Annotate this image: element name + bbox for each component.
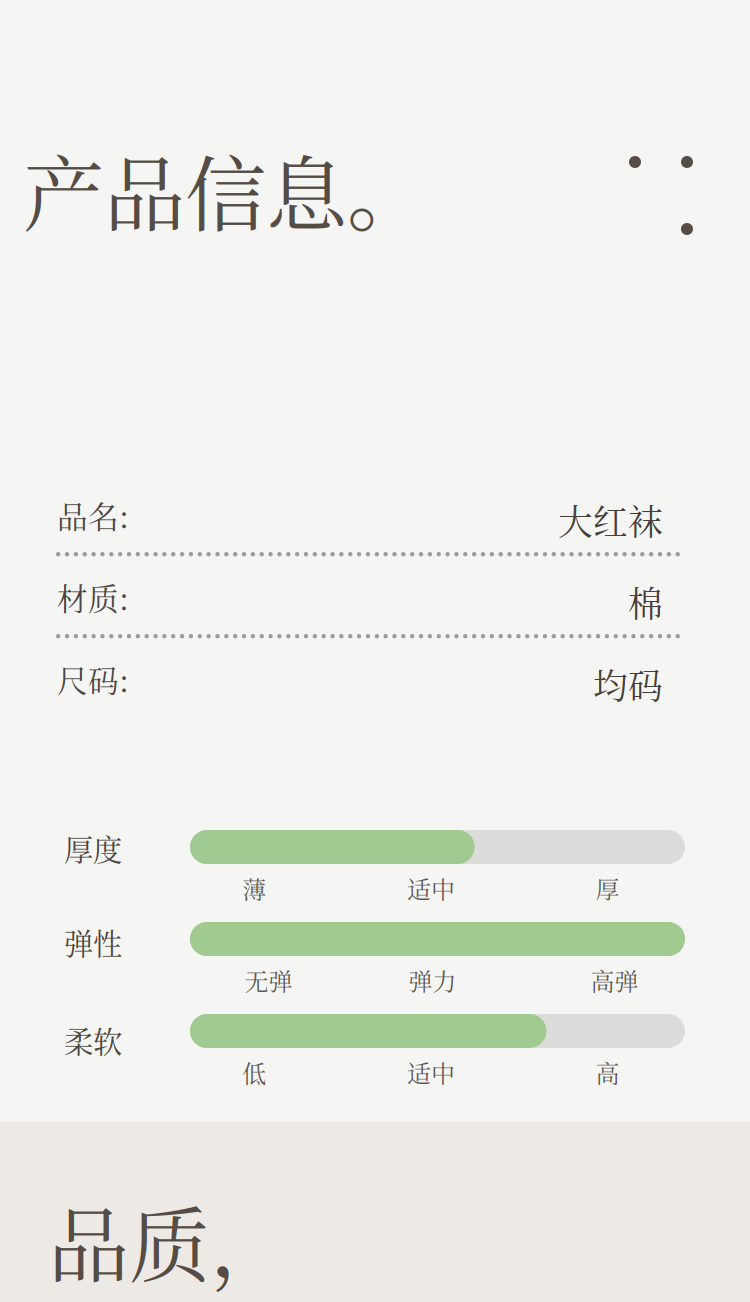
staticText: 薄	[242, 871, 266, 905]
staticText: 柔软	[64, 1019, 122, 1061]
staticText: 均码	[593, 659, 663, 709]
staticText: 高弹	[590, 963, 638, 997]
staticText: 尺码:	[57, 657, 129, 701]
staticText: 产品信息。	[23, 131, 428, 248]
staticText: 材质:	[57, 575, 129, 619]
staticText: 厚	[595, 871, 619, 905]
staticText: 弹性	[64, 921, 122, 963]
staticText: 低	[242, 1055, 266, 1089]
staticText: 高	[595, 1055, 619, 1089]
staticText: 棉	[628, 577, 663, 627]
staticText: 适中	[407, 1055, 455, 1089]
staticText: 厚度	[64, 827, 122, 869]
staticText: 品质，	[48, 1182, 291, 1299]
button[interactable]: 更多选项	[623, 140, 743, 270]
staticText: 弹力	[408, 963, 456, 997]
staticText: 无弹	[244, 963, 292, 997]
staticText: 品名:	[57, 493, 129, 537]
staticText: 大红袜	[558, 495, 663, 545]
staticText: 适中	[407, 871, 455, 905]
